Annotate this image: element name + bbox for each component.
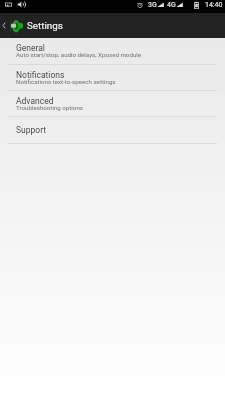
staticText: 4G (167, 1, 176, 9)
staticText: Auto start/stop, audio delays, Xposed mo… (16, 51, 142, 58)
staticText: General (16, 43, 45, 53)
staticText: 14:40 (205, 1, 223, 9)
button[interactable]: General (0, 38, 225, 64)
button[interactable]: Advanced (0, 91, 225, 116)
staticText: Notifications text-to-speech settings (16, 78, 116, 85)
staticText: Troubleshooting options (16, 104, 83, 111)
button[interactable]: Notifications (0, 65, 225, 90)
staticText: Settings (27, 20, 63, 31)
staticText: Notifications (16, 70, 65, 80)
button[interactable]: Support (0, 117, 225, 143)
staticText: 3G (148, 1, 157, 9)
staticText: Advanced (16, 96, 54, 106)
button[interactable]: Navigate up (0, 13, 24, 38)
staticText: Support (16, 125, 46, 135)
